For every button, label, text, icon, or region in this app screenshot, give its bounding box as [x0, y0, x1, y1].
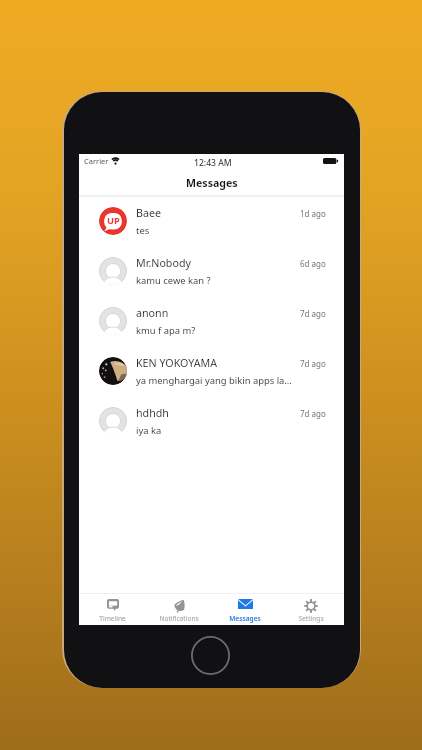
staticText: ya menghargai yang bikin apps la...: [136, 374, 292, 387]
staticText: tes: [136, 224, 150, 237]
button[interactable]: hdhdh: [79, 398, 344, 448]
staticText: Messages: [186, 176, 238, 190]
staticText: Settings: [298, 614, 324, 623]
staticText: 7d ago: [300, 358, 326, 369]
staticText: 12:43 AM: [194, 157, 232, 169]
staticText: 1d ago: [300, 208, 326, 219]
staticText: 6d ago: [300, 258, 326, 269]
button[interactable]: anonn: [79, 298, 344, 348]
staticText: Mr.Nobody: [136, 256, 191, 271]
staticText: Timeline: [99, 614, 126, 623]
staticText: UP: [107, 214, 120, 227]
button[interactable]: Timeline: [79, 594, 146, 625]
staticText: kamu cewe kan ?: [136, 274, 211, 287]
button[interactable]: Messages: [212, 594, 278, 625]
button[interactable]: Notifications: [146, 594, 212, 625]
staticText: Messages: [229, 614, 261, 623]
staticText: Carrier: [84, 156, 109, 166]
staticText: Baee: [136, 206, 161, 221]
staticText: Notifications: [159, 614, 199, 623]
button[interactable]: UP: [79, 198, 344, 248]
staticText: hdhdh: [136, 406, 169, 421]
staticText: iya ka: [136, 424, 162, 437]
staticText: kmu f apa m?: [136, 324, 196, 337]
button[interactable]: Settings: [278, 594, 344, 625]
staticText: KEN YOKOYAMA: [136, 356, 218, 371]
staticText: 7d ago: [300, 308, 326, 319]
staticText: anonn: [136, 306, 169, 321]
staticText: 7d ago: [300, 408, 326, 419]
button[interactable]: Mr.Nobody: [79, 248, 344, 298]
button[interactable]: KEN YOKOYAMA: [79, 348, 344, 398]
